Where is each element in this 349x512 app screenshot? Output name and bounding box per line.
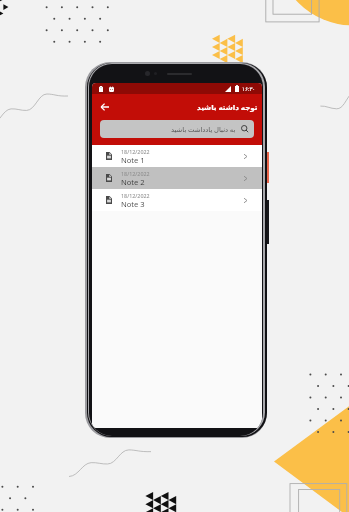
staticText: به دنبال یادداشت باشید — [171, 125, 236, 134]
staticText: Note 3 — [121, 199, 145, 209]
staticText: Note 1 — [121, 155, 145, 165]
staticText: ۱۶:۳۰ — [242, 85, 256, 92]
staticText: 18/12/2022 — [121, 192, 150, 199]
button[interactable]: 18/12/2022 — [92, 145, 262, 167]
button[interactable]: 18/12/2022 — [92, 167, 262, 189]
staticText: Note 2 — [121, 177, 145, 187]
button[interactable]: Back — [96, 99, 112, 115]
staticText: توجه داشته باشید — [197, 102, 258, 112]
button[interactable]: 18/12/2022 — [92, 189, 262, 211]
button[interactable]: به دنبال یادداشت باشید — [100, 120, 254, 138]
staticText: 18/12/2022 — [121, 170, 150, 177]
staticText: 18/12/2022 — [121, 148, 150, 155]
